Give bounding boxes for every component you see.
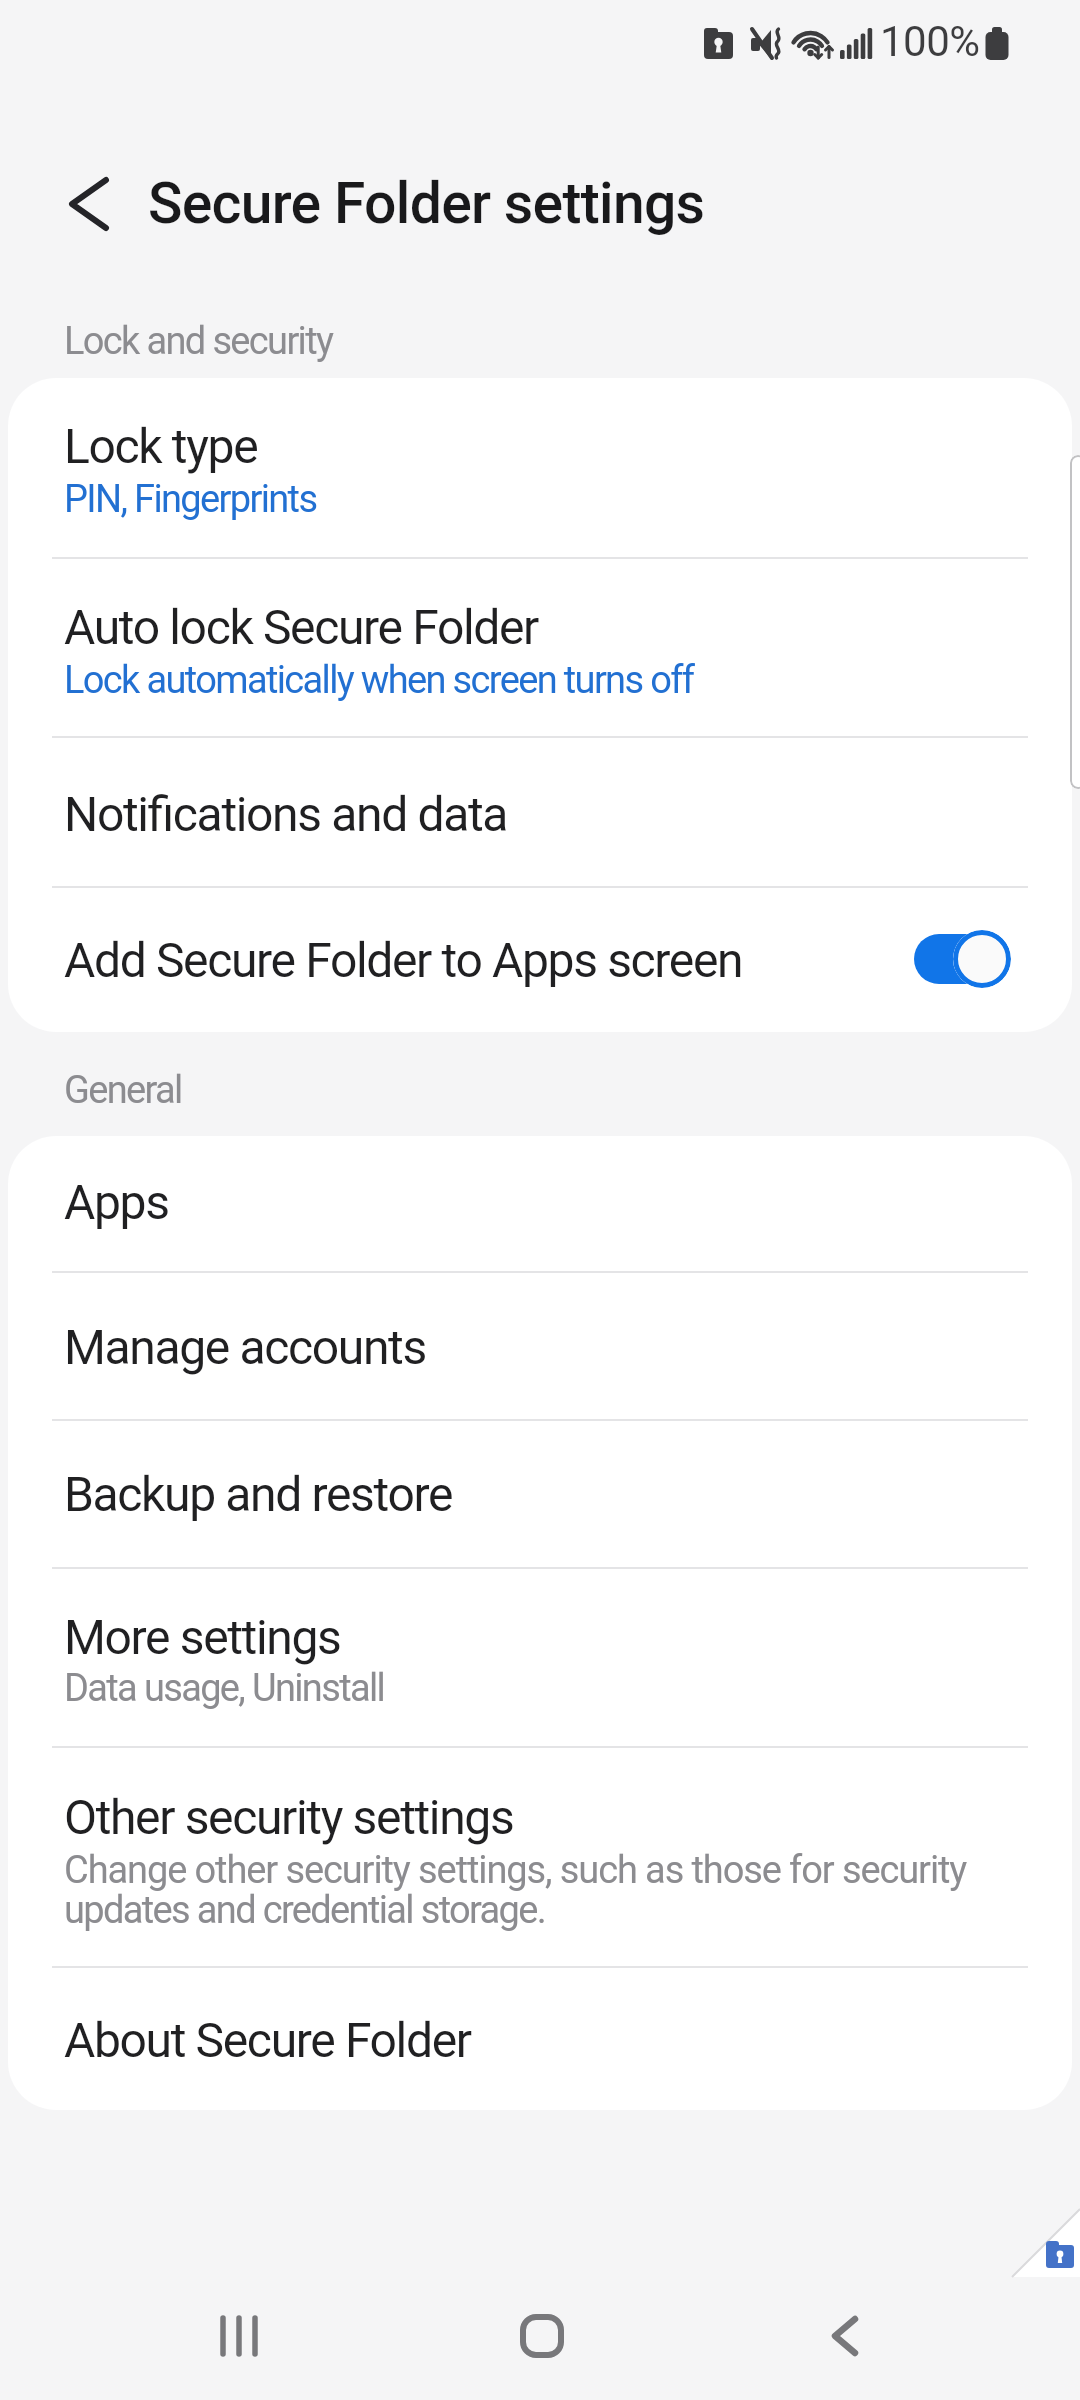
button[interactable] bbox=[1010, 2205, 1080, 2280]
staticText: Auto lock Secure Folder bbox=[64, 599, 538, 655]
button[interactable] bbox=[8, 1420, 1072, 1568]
staticText: Backup and restore bbox=[64, 1466, 453, 1522]
staticText: Lock and security bbox=[64, 319, 333, 364]
button[interactable] bbox=[8, 1967, 1072, 2110]
button[interactable] bbox=[8, 737, 1072, 887]
button[interactable] bbox=[914, 934, 1010, 984]
button[interactable] bbox=[8, 1272, 1072, 1420]
staticText: Apps bbox=[64, 1174, 169, 1230]
button[interactable] bbox=[8, 558, 1072, 737]
staticText: Other security settings bbox=[64, 1789, 514, 1845]
staticText: Change other security settings, such as … bbox=[64, 1848, 967, 1893]
button[interactable] bbox=[8, 1747, 1072, 1967]
staticText: Lock type bbox=[64, 418, 258, 474]
button[interactable] bbox=[195, 2305, 285, 2367]
staticText: Data usage, Uninstall bbox=[64, 1666, 385, 1711]
staticText: Add Secure Folder to Apps screen bbox=[64, 932, 743, 988]
button[interactable] bbox=[44, 158, 136, 250]
staticText: Lock automatically when screen turns off bbox=[64, 658, 694, 703]
button[interactable] bbox=[8, 1568, 1072, 1747]
button[interactable] bbox=[510, 2305, 574, 2367]
button[interactable] bbox=[810, 2305, 880, 2367]
staticText: Manage accounts bbox=[64, 1319, 426, 1375]
staticText: PIN, Fingerprints bbox=[64, 477, 317, 522]
staticText: More settings bbox=[64, 1609, 341, 1665]
staticText: Notifications and data bbox=[64, 786, 508, 842]
staticText: 100% bbox=[880, 17, 980, 66]
staticText: updates and credential storage. bbox=[64, 1888, 546, 1933]
button[interactable] bbox=[8, 1136, 1072, 1272]
button[interactable] bbox=[8, 378, 1072, 558]
button[interactable] bbox=[8, 887, 1072, 1032]
staticText: Secure Folder settings bbox=[148, 170, 705, 237]
staticText: General bbox=[64, 1068, 182, 1113]
staticText: About Secure Folder bbox=[64, 2012, 471, 2068]
